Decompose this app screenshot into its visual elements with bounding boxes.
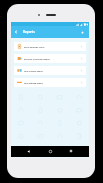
button[interactable]: Back (11, 26, 21, 38)
button[interactable]: Fund Funding Report (14, 78, 86, 87)
button[interactable]: Fund Transfer Report (14, 66, 86, 75)
button[interactable]: Recharge Transaction Report (14, 54, 86, 63)
staticText: Reports (23, 30, 35, 34)
button[interactable]: Home (47, 148, 53, 154)
button[interactable]: Notifications (79, 29, 86, 36)
staticText: Fund Transfer Report (24, 70, 43, 72)
button[interactable]: Back (25, 148, 31, 154)
staticText: Recharge Transaction Report (24, 58, 50, 60)
staticText: Direct Recharge Status (24, 46, 45, 48)
button[interactable]: Recent apps (68, 148, 74, 154)
button[interactable]: Direct Recharge Status (14, 42, 86, 51)
staticText: Fund Funding Report (24, 82, 43, 84)
